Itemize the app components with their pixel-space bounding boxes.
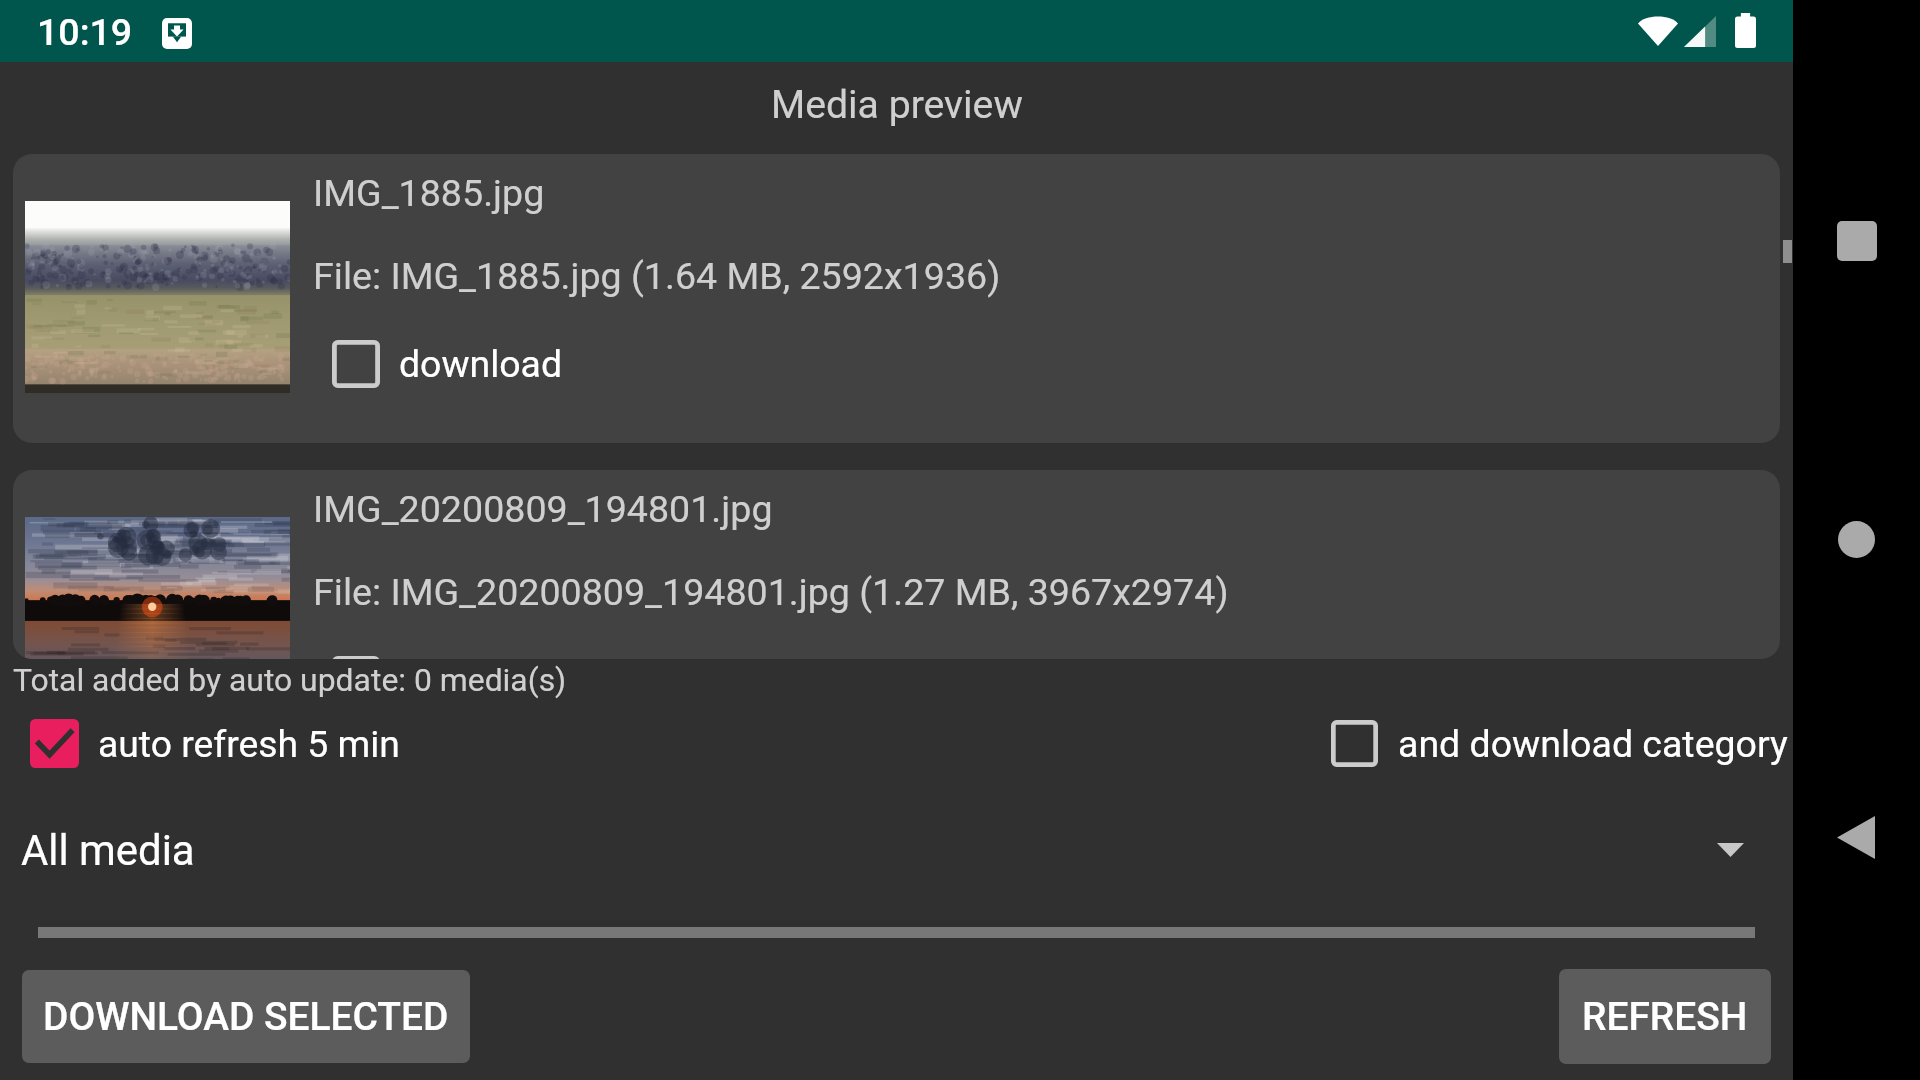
button[interactable]: REFRESH bbox=[1559, 969, 1771, 1064]
staticText: Total added by auto update: 0 media(s) bbox=[13, 661, 567, 698]
staticText: and download category bbox=[1398, 722, 1788, 766]
staticText: download bbox=[399, 342, 562, 386]
button[interactable]: IMG_1885.jpg bbox=[13, 154, 1780, 443]
button[interactable]: IMG_20200809_194801.jpg bbox=[13, 470, 1780, 659]
staticText: File: IMG_1885.jpg (1.64 MB, 2592x1936) bbox=[313, 254, 1001, 298]
button[interactable]: download bbox=[332, 656, 562, 659]
button[interactable]: DOWNLOAD SELECTED bbox=[22, 970, 470, 1063]
staticText: DOWNLOAD SELECTED bbox=[43, 994, 449, 1040]
button[interactable]: and download category bbox=[1331, 720, 1788, 767]
staticText: IMG_20200809_194801.jpg bbox=[313, 487, 773, 531]
button[interactable]: All media bbox=[0, 809, 1793, 929]
staticText: auto refresh 5 min bbox=[98, 722, 400, 766]
staticText: 10:19 bbox=[37, 10, 133, 54]
staticText: IMG_1885.jpg bbox=[313, 171, 545, 215]
staticText: All media bbox=[21, 826, 195, 875]
staticText: REFRESH bbox=[1582, 994, 1748, 1040]
button[interactable]: download bbox=[332, 340, 562, 388]
staticText: File: IMG_20200809_194801.jpg (1.27 MB, … bbox=[313, 570, 1229, 614]
button[interactable]: Home bbox=[1838, 521, 1875, 558]
button[interactable]: Recent apps bbox=[1837, 221, 1877, 261]
button[interactable]: Back bbox=[1837, 816, 1875, 859]
staticText: Media preview bbox=[771, 82, 1023, 128]
button[interactable]: auto refresh 5 min bbox=[30, 719, 400, 768]
